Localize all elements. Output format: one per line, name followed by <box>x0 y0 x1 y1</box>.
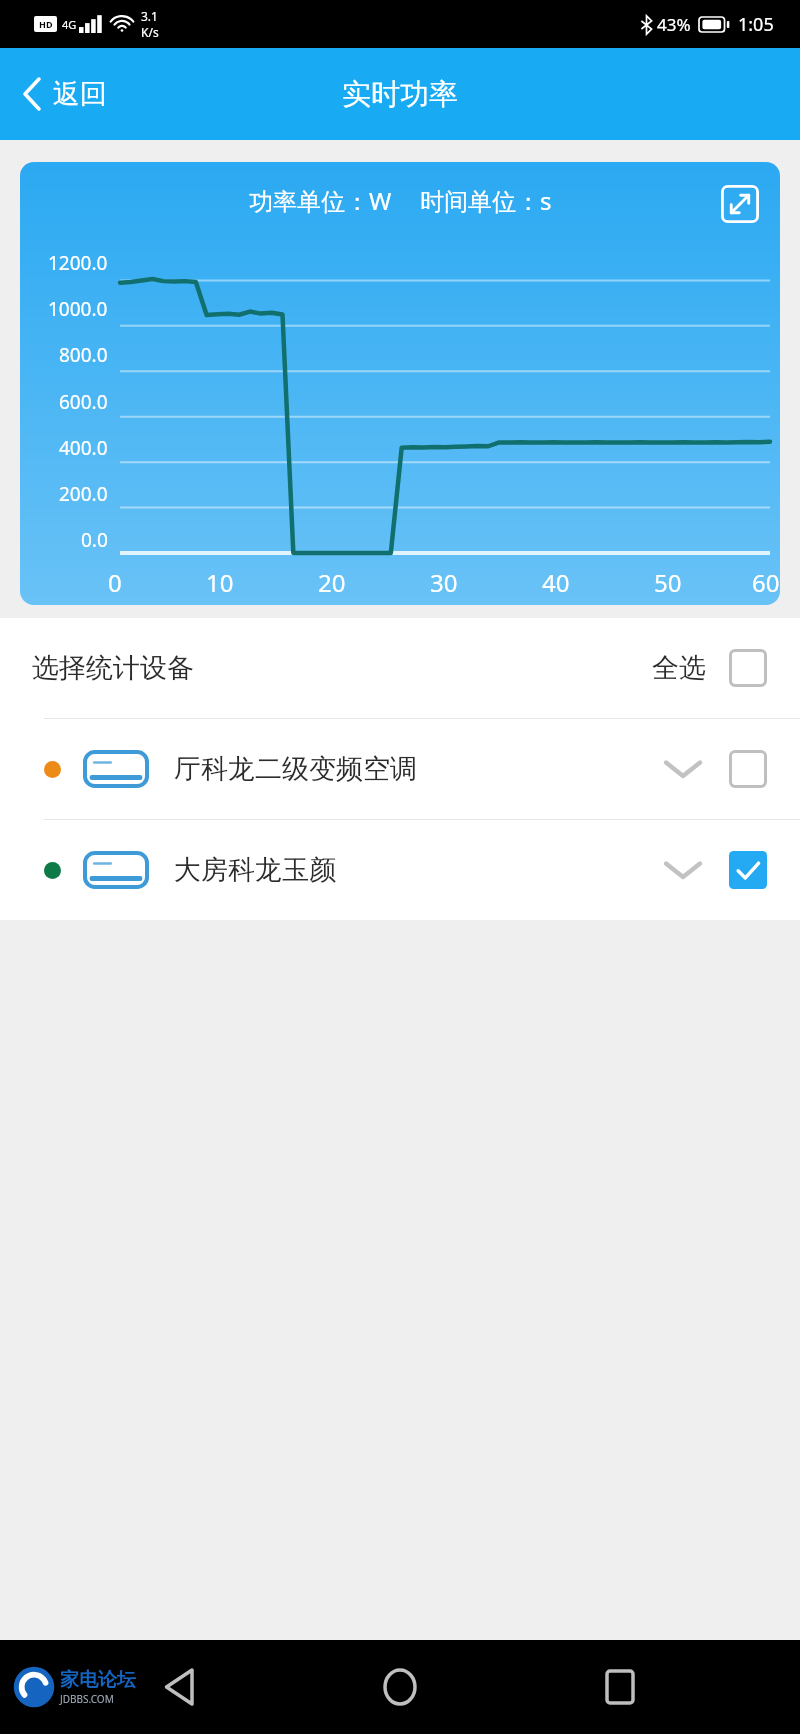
staticText: 200.0 <box>59 481 108 507</box>
staticText: JDBBS.COM <box>60 1692 114 1706</box>
button[interactable]: Select <box>728 749 768 789</box>
staticText: 返回 <box>53 77 107 111</box>
button[interactable]: Recents <box>580 1647 660 1727</box>
staticText: 选择统计设备 <box>32 651 194 685</box>
staticText: 1200.0 <box>48 250 108 276</box>
button[interactable]: 大房科龙玉颜 <box>0 820 800 920</box>
button[interactable]: Expand <box>654 740 712 798</box>
staticText: 4G <box>62 17 77 32</box>
button[interactable]: Expand <box>654 841 712 899</box>
staticText: 10 <box>206 566 234 599</box>
staticText: 实时功率 <box>342 76 458 113</box>
staticText: 3.1 <box>141 8 158 24</box>
staticText: 20 <box>318 566 346 599</box>
staticText: 40 <box>542 566 570 599</box>
staticText: 400.0 <box>59 435 108 461</box>
staticText: 60 <box>752 566 780 599</box>
staticText: 0.0 <box>81 527 108 553</box>
staticText: 0 <box>108 566 122 599</box>
staticText: 30 <box>430 566 458 599</box>
staticText: 全选 <box>652 651 706 685</box>
staticText: 厅科龙二级变频空调 <box>174 752 417 786</box>
button[interactable]: 功率单位：W <box>20 162 780 605</box>
staticText: 1:05 <box>738 12 774 37</box>
button[interactable]: 厅科龙二级变频空调 <box>0 719 800 819</box>
staticText: 600.0 <box>59 389 108 415</box>
staticText: 功率单位：W <box>249 184 392 217</box>
button[interactable]: Home <box>360 1647 440 1727</box>
staticText: 大房科龙玉颜 <box>174 853 336 887</box>
staticText: HD <box>39 18 53 30</box>
staticText: K/s <box>141 24 159 40</box>
button[interactable]: Fullscreen <box>712 176 768 232</box>
staticText: 1000.0 <box>48 296 108 322</box>
button[interactable]: Back <box>140 1647 220 1727</box>
button[interactable]: 选择统计设备 <box>0 618 800 718</box>
staticText: 43% <box>657 13 691 36</box>
button[interactable]: 返回 <box>0 63 127 125</box>
staticText: 时间单位：s <box>420 184 552 217</box>
staticText: 800.0 <box>59 342 108 368</box>
button[interactable]: Select <box>728 850 768 890</box>
staticText: 50 <box>654 566 682 599</box>
staticText: 家电论坛 <box>60 1668 136 1692</box>
button[interactable]: Select <box>728 648 768 688</box>
